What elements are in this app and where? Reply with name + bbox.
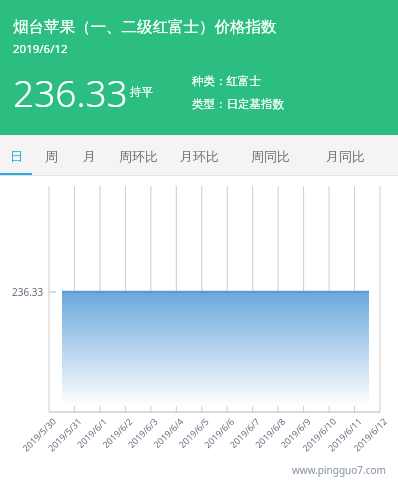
button[interactable]: 月环比 bbox=[168, 135, 230, 176]
staticText: 月 bbox=[83, 148, 96, 164]
staticText: 周环比 bbox=[119, 148, 158, 164]
staticText: 种类：红富士 bbox=[192, 74, 261, 88]
button[interactable]: 日 bbox=[0, 135, 32, 176]
button[interactable]: 周同比 bbox=[230, 135, 310, 176]
staticText: 周同比 bbox=[251, 148, 290, 164]
button[interactable]: 周环比 bbox=[108, 135, 168, 176]
button[interactable]: 月 bbox=[70, 135, 108, 176]
staticText: 类型：日定基指数 bbox=[192, 97, 284, 111]
button[interactable]: 月同比 bbox=[310, 135, 380, 176]
staticText: 2019/6/12 bbox=[13, 41, 68, 57]
staticText: 周 bbox=[45, 148, 58, 164]
staticText: 日 bbox=[10, 148, 23, 164]
staticText: 月环比 bbox=[180, 148, 219, 164]
staticText: 月同比 bbox=[326, 148, 365, 164]
staticText: 236.33 bbox=[13, 67, 128, 117]
button[interactable]: 周 bbox=[32, 135, 70, 176]
staticText: 持平 bbox=[130, 85, 153, 99]
staticText: 烟台苹果（一、二级红富士）价格指数 bbox=[13, 17, 277, 37]
